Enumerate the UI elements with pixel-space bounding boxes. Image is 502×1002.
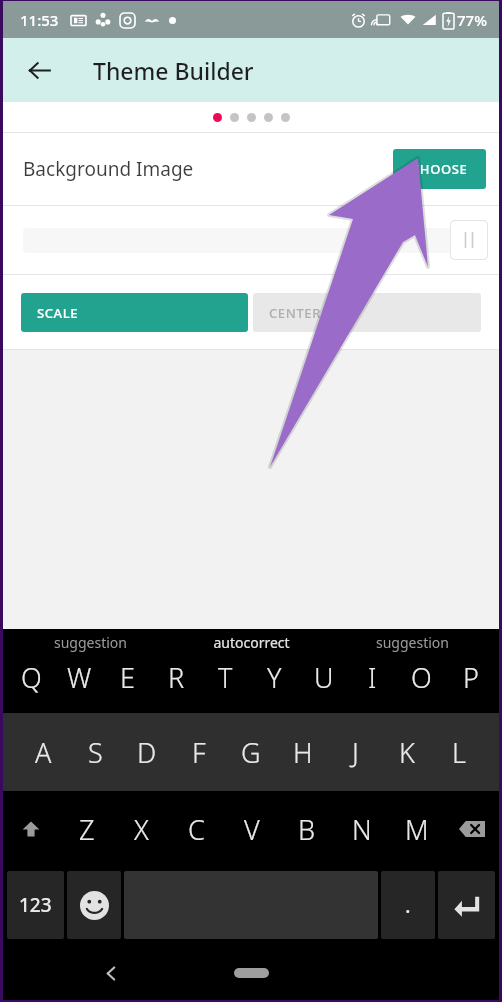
button[interactable]: I xyxy=(348,655,397,699)
staticText: 77% xyxy=(457,10,487,30)
button[interactable]: F xyxy=(173,730,225,774)
staticText: CENTER xyxy=(269,304,321,322)
staticText: CHOOSE xyxy=(411,160,468,178)
button[interactable]: Z xyxy=(59,791,114,867)
staticText: R xyxy=(168,659,185,696)
button[interactable]: E xyxy=(103,655,152,699)
button[interactable]: N xyxy=(334,791,389,867)
button[interactable]: M xyxy=(389,791,444,867)
staticText: K xyxy=(399,734,415,771)
button[interactable]: Opacity slider xyxy=(3,215,499,265)
staticText: X xyxy=(134,811,149,848)
button[interactable]: S xyxy=(69,730,121,774)
button[interactable]: H xyxy=(277,730,329,774)
button[interactable]: T xyxy=(201,655,250,699)
staticText: G xyxy=(241,734,261,771)
button[interactable]: suggestion xyxy=(332,633,493,652)
staticText: . xyxy=(405,891,411,920)
button[interactable]: Q xyxy=(7,655,55,699)
button[interactable]: Y xyxy=(250,655,299,699)
staticText: U xyxy=(314,659,334,696)
button[interactable]: D xyxy=(121,730,173,774)
staticText: E xyxy=(120,659,135,696)
staticText: J xyxy=(352,734,359,771)
staticText: C xyxy=(188,811,205,848)
button[interactable]: Home xyxy=(228,962,274,984)
button[interactable]: P xyxy=(446,655,495,699)
staticText: N xyxy=(352,811,372,848)
button[interactable]: X xyxy=(114,791,169,867)
button[interactable]: O xyxy=(397,655,446,699)
button[interactable]: L xyxy=(433,730,485,774)
staticText: V xyxy=(244,811,260,848)
staticText: SCALE xyxy=(37,304,79,322)
button[interactable]: A xyxy=(17,730,69,774)
button[interactable]: Backspace xyxy=(444,791,499,867)
staticText: W xyxy=(67,659,92,696)
staticText: Q xyxy=(21,659,42,696)
staticText: A xyxy=(35,734,52,771)
staticText: suggestion xyxy=(376,633,449,652)
button[interactable]: U xyxy=(299,655,348,699)
staticText: P xyxy=(463,659,479,696)
staticText: H xyxy=(293,734,313,771)
button[interactable]: R xyxy=(152,655,201,699)
button[interactable]: suggestion xyxy=(9,633,171,652)
button[interactable]: C xyxy=(169,791,224,867)
button[interactable]: Shift xyxy=(3,791,59,867)
button[interactable]: K xyxy=(381,730,433,774)
staticText: Theme Builder xyxy=(93,55,254,86)
button[interactable]: 123 xyxy=(7,871,64,939)
button[interactable]: SCALE xyxy=(21,293,248,332)
button[interactable]: V xyxy=(224,791,279,867)
button[interactable]: Back xyxy=(17,48,61,92)
staticText: O xyxy=(411,659,432,696)
staticText: S xyxy=(88,734,103,771)
button[interactable]: G xyxy=(225,730,277,774)
staticText: Y xyxy=(267,659,282,696)
staticText: L xyxy=(452,734,466,771)
staticText: suggestion xyxy=(54,633,127,652)
staticText: Z xyxy=(79,811,95,848)
staticText: T xyxy=(218,659,233,696)
button[interactable]: . xyxy=(381,871,435,939)
button[interactable]: B xyxy=(279,791,334,867)
button[interactable]: Emoji xyxy=(67,871,121,939)
button[interactable]: CENTER xyxy=(253,293,481,332)
staticText: 123 xyxy=(19,892,52,918)
button[interactable]: Enter xyxy=(438,871,495,939)
button[interactable]: autocorrect xyxy=(171,633,332,652)
staticText: Background Image xyxy=(23,156,194,182)
button[interactable]: W xyxy=(55,655,103,699)
staticText: D xyxy=(137,734,157,771)
staticText: 11:53 xyxy=(20,10,59,30)
staticText: I xyxy=(368,659,377,696)
button[interactable]: J xyxy=(329,730,381,774)
staticText: M xyxy=(405,811,429,848)
button[interactable]: CHOOSE xyxy=(393,149,486,189)
staticText: autocorrect xyxy=(213,633,290,652)
button[interactable]: Back xyxy=(91,953,131,993)
staticText: F xyxy=(192,734,206,771)
staticText: B xyxy=(298,811,316,848)
